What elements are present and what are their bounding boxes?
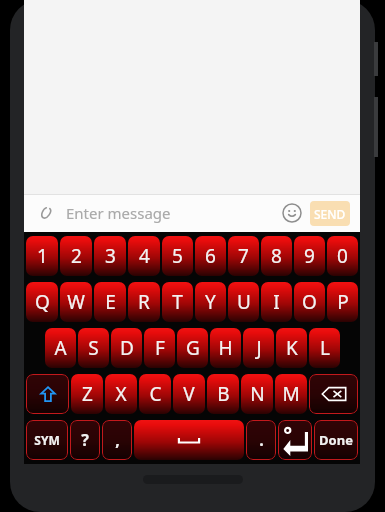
button[interactable]: B	[207, 374, 239, 414]
button[interactable]: 7	[228, 236, 259, 276]
button[interactable]: P	[327, 282, 358, 322]
button[interactable]: C	[139, 374, 171, 414]
button[interactable]: 1	[26, 236, 58, 276]
staticText: K	[286, 335, 298, 361]
button[interactable]: S	[78, 328, 109, 368]
button[interactable]: Z	[71, 374, 103, 414]
button[interactable]: Backspace	[309, 374, 358, 414]
button[interactable]: Enter	[278, 420, 312, 460]
button[interactable]: 8	[261, 236, 292, 276]
button[interactable]: X	[105, 374, 137, 414]
staticText: 2	[71, 243, 82, 269]
staticText: V	[183, 381, 195, 407]
button[interactable]: ?	[70, 420, 100, 460]
staticText: 4	[139, 243, 150, 269]
button[interactable]: A	[45, 328, 76, 368]
staticText: 1	[37, 243, 48, 269]
button[interactable]: D	[111, 328, 142, 368]
button[interactable]: R	[128, 282, 160, 322]
staticText: F	[155, 335, 165, 361]
button[interactable]: T	[162, 282, 193, 322]
staticText: H	[218, 335, 233, 361]
button[interactable]: K	[276, 328, 307, 368]
staticText: E	[105, 289, 116, 315]
staticText: N	[250, 381, 265, 407]
staticText: B	[217, 381, 230, 407]
staticText: .	[259, 429, 264, 451]
staticText: W	[67, 289, 85, 315]
button[interactable]: M	[275, 374, 307, 414]
button[interactable]: O	[294, 282, 325, 322]
button[interactable]: 3	[94, 236, 126, 276]
staticText: Q	[35, 289, 50, 315]
button[interactable]: 2	[60, 236, 92, 276]
staticText: 6	[205, 243, 216, 269]
button[interactable]: 6	[195, 236, 226, 276]
staticText: G	[186, 335, 200, 361]
staticText: O	[302, 289, 317, 315]
button[interactable]	[134, 420, 244, 460]
staticText: P	[337, 289, 349, 315]
button[interactable]: H	[210, 328, 241, 368]
staticText: 3	[105, 243, 116, 269]
staticText: U	[237, 289, 251, 315]
staticText: L	[320, 335, 330, 361]
staticText: C	[149, 381, 162, 407]
button[interactable]: 0	[327, 236, 358, 276]
button[interactable]: J	[243, 328, 274, 368]
button[interactable]: V	[173, 374, 205, 414]
staticText: SYM	[34, 432, 60, 448]
button[interactable]: 4	[128, 236, 160, 276]
button[interactable]: E	[94, 282, 126, 322]
button[interactable]: U	[228, 282, 259, 322]
staticText: M	[282, 381, 300, 407]
button[interactable]: .	[246, 420, 276, 460]
staticText: 0	[337, 243, 348, 269]
staticText: X	[115, 381, 127, 407]
staticText: D	[120, 335, 134, 361]
button[interactable]: Attach	[34, 202, 56, 224]
button[interactable]: Shift	[26, 374, 69, 414]
button[interactable]: ,	[102, 420, 132, 460]
button[interactable]: SEND	[310, 201, 350, 226]
button[interactable]: G	[177, 328, 208, 368]
button[interactable]: Q	[26, 282, 58, 322]
button[interactable]: Done	[314, 420, 358, 460]
staticText: SEND	[314, 206, 346, 222]
button[interactable]: W	[60, 282, 92, 322]
staticText: ,	[115, 429, 120, 451]
staticText: T	[172, 289, 183, 315]
staticText: 9	[304, 243, 315, 269]
staticText: ?	[81, 429, 89, 451]
button[interactable]: Emoji	[280, 201, 304, 225]
staticText: Done	[319, 431, 353, 449]
button[interactable]: N	[241, 374, 273, 414]
staticText: Z	[82, 381, 93, 407]
staticText: A	[54, 335, 67, 361]
staticText: J	[256, 335, 262, 361]
staticText: Enter message	[66, 203, 171, 223]
staticText: 7	[238, 243, 249, 269]
button[interactable]: F	[144, 328, 175, 368]
button[interactable]: SYM	[26, 420, 68, 460]
staticText: Y	[205, 289, 216, 315]
button[interactable]: Y	[195, 282, 226, 322]
button[interactable]: L	[309, 328, 340, 368]
staticText: 8	[271, 243, 282, 269]
button[interactable]: 5	[162, 236, 193, 276]
button[interactable]: 9	[294, 236, 325, 276]
staticText: R	[138, 289, 150, 315]
staticText: I	[273, 289, 280, 315]
staticText: 5	[172, 243, 183, 269]
button[interactable]: I	[261, 282, 292, 322]
staticText: S	[88, 335, 99, 361]
